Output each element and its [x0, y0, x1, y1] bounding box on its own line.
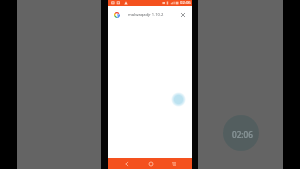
button[interactable]: Recording time 02:06 — [223, 115, 259, 151]
button[interactable]: Close — [178, 10, 187, 19]
button[interactable]: Recent apps — [168, 158, 179, 169]
staticText: malwaqadjr 1.10.2 — [128, 12, 164, 18]
staticText: 02:06 — [232, 129, 253, 140]
button[interactable]: Home — [145, 158, 156, 169]
button[interactable]: malwaqadjr 1.10.2 — [108, 6, 192, 23]
button[interactable]: Back — [121, 158, 132, 169]
staticText: 02:06 — [180, 0, 191, 6]
